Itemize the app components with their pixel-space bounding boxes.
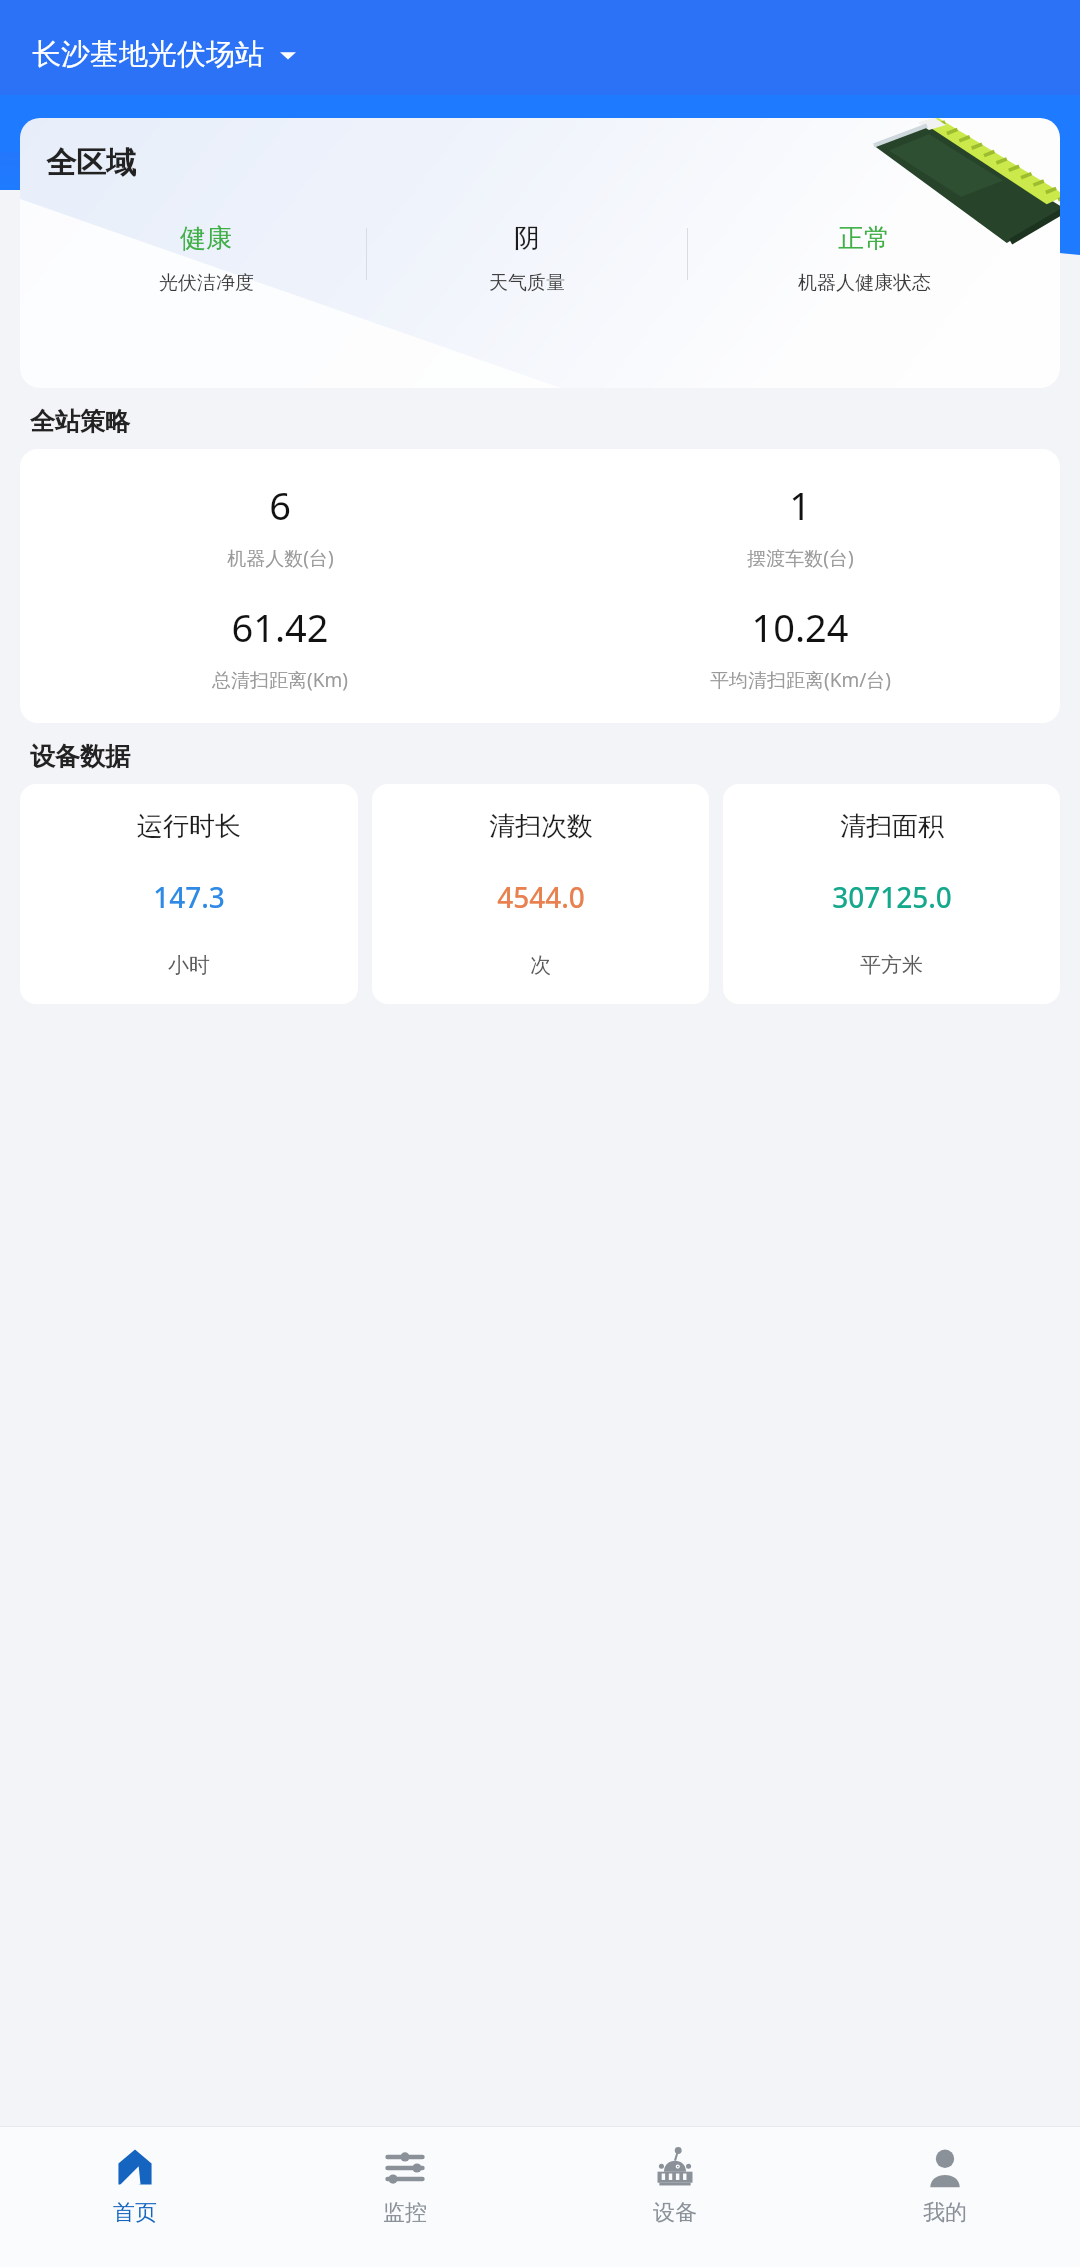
staticText: 次 [530, 952, 551, 978]
staticText: 摆渡车数(台) [747, 545, 854, 571]
other: 监控 [382, 2145, 428, 2191]
button[interactable]: 设备 [540, 2127, 810, 2267]
staticText: 天气质量 [489, 271, 565, 295]
staticText: 光伏洁净度 [159, 271, 254, 295]
staticText: 10.24 [751, 601, 849, 653]
staticText: 机器人数(台) [227, 545, 334, 571]
staticText: 运行时长 [137, 810, 241, 843]
other: 首页 [112, 2145, 158, 2191]
button[interactable]: 清扫面积 [723, 784, 1060, 1004]
staticText: 147.3 [153, 878, 225, 916]
staticText: 全站策略 [30, 406, 130, 437]
staticText: 6 [269, 479, 291, 531]
staticText: 全区域 [46, 144, 136, 182]
staticText: 正常 [838, 222, 890, 255]
staticText: 我的 [923, 2199, 967, 2227]
staticText: 监控 [383, 2199, 427, 2227]
staticText: 61.42 [231, 601, 329, 653]
staticText: 总清扫距离(Km) [212, 667, 348, 693]
staticText: 小时 [168, 952, 210, 978]
other: 设备 [652, 2145, 698, 2191]
staticText: 长沙基地光伏场站 [32, 36, 264, 73]
button[interactable]: 运行时长 [20, 784, 358, 1004]
other: 我的 [922, 2145, 968, 2191]
button[interactable]: 监控 [270, 2127, 540, 2267]
staticText: 平均清扫距离(Km/台) [710, 667, 891, 693]
staticText: 机器人健康状态 [798, 271, 931, 295]
button[interactable]: 6 [20, 449, 1060, 723]
staticText: 设备 [653, 2199, 697, 2227]
staticText: 清扫次数 [489, 810, 593, 843]
staticText: 1 [789, 479, 811, 531]
button[interactable]: 我的 [810, 2127, 1080, 2267]
button[interactable]: 清扫次数 [372, 784, 709, 1004]
staticText: 健康 [180, 222, 232, 255]
staticText: 阴 [514, 222, 540, 255]
staticText: 清扫面积 [840, 810, 944, 843]
staticText: 首页 [113, 2199, 157, 2227]
button[interactable]: 全区域 [20, 118, 1060, 388]
staticText: 307125.0 [832, 878, 952, 916]
button[interactable]: 首页 [0, 2127, 270, 2267]
staticText: 平方米 [860, 952, 923, 978]
button[interactable]: 长沙基地光伏场站 [28, 32, 302, 77]
staticText: 设备数据 [30, 741, 130, 772]
staticText: 4544.0 [497, 878, 585, 916]
